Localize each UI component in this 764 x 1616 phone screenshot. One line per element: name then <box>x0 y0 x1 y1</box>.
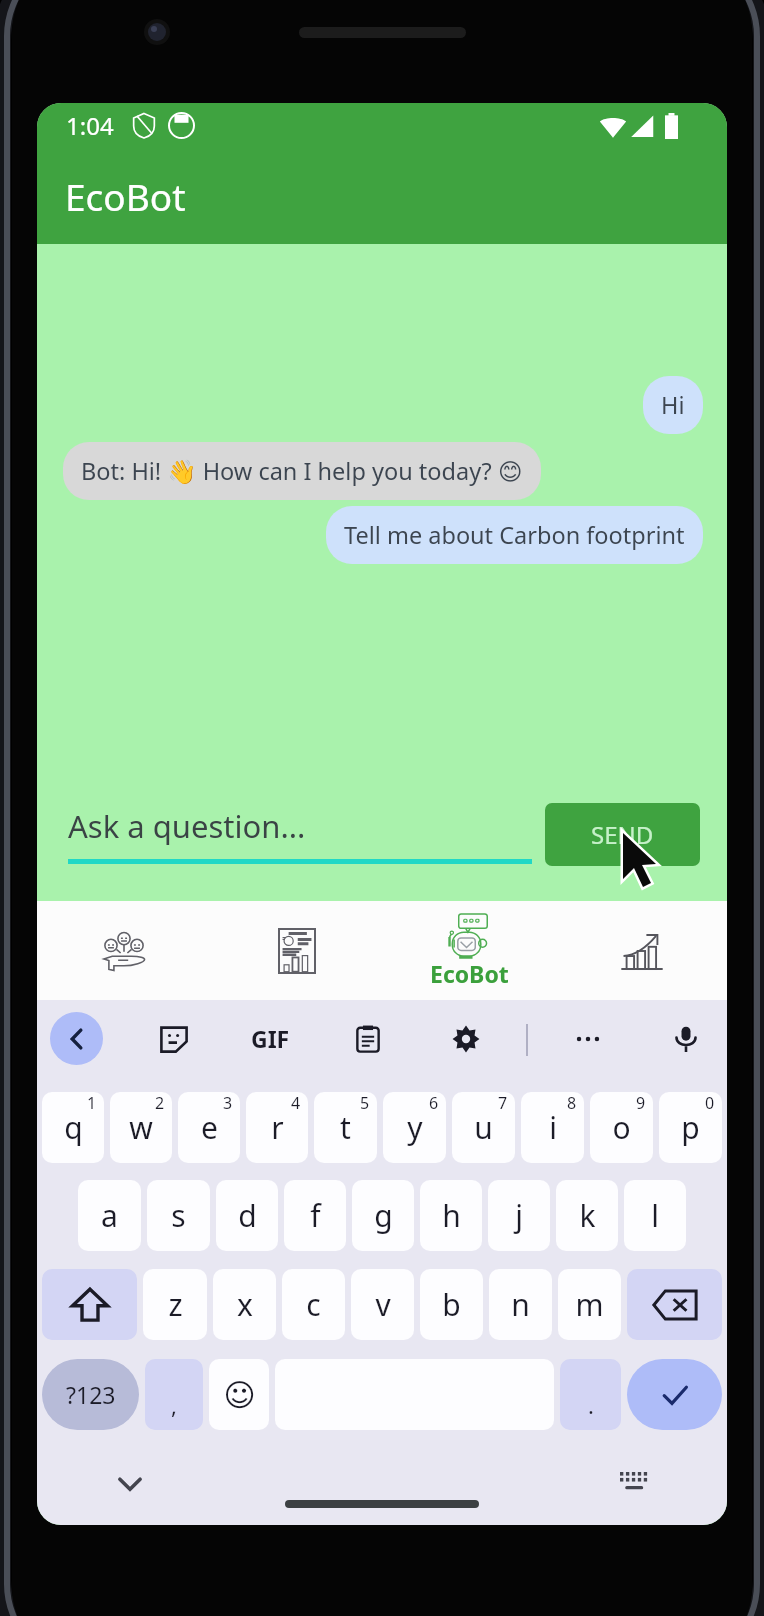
staticText: y <box>407 1107 423 1148</box>
button[interactable]: e <box>178 1092 240 1163</box>
staticText: i <box>549 1107 557 1148</box>
staticText: e <box>201 1107 218 1148</box>
staticText: d <box>238 1195 257 1236</box>
button[interactable]: r <box>246 1092 308 1163</box>
staticText: o <box>612 1107 631 1148</box>
staticText: ?123 <box>66 1379 116 1410</box>
staticText: ☺ <box>223 1377 256 1413</box>
button[interactable]: Voice input <box>659 1012 712 1065</box>
button[interactable]: o <box>590 1092 653 1163</box>
button[interactable]: Reports <box>210 901 383 1000</box>
button[interactable]: t <box>314 1092 377 1163</box>
button[interactable]: l <box>624 1180 686 1251</box>
staticText: t <box>340 1107 351 1148</box>
staticText: 0 <box>705 1092 715 1114</box>
button[interactable]: m <box>558 1269 621 1340</box>
staticText: Ask a question... <box>68 805 306 847</box>
button[interactable]: ?123 <box>42 1359 139 1430</box>
button[interactable]: n <box>489 1269 552 1340</box>
staticText: r <box>271 1107 284 1148</box>
staticText: 2 <box>155 1092 165 1114</box>
button[interactable]: Tell me about Carbon footprint <box>326 506 703 564</box>
button[interactable]: h <box>420 1180 482 1251</box>
button[interactable]: SEND <box>545 803 700 866</box>
button[interactable]: a <box>78 1180 141 1251</box>
button[interactable]: Community <box>37 901 210 1000</box>
staticText: a <box>101 1195 118 1236</box>
button[interactable]: k <box>556 1180 618 1251</box>
button[interactable]: Back <box>50 1012 103 1065</box>
staticText: b <box>442 1284 461 1325</box>
staticText: z <box>168 1284 183 1325</box>
button[interactable]: Hi <box>643 376 703 434</box>
staticText: 8 <box>567 1092 577 1114</box>
button[interactable]: v <box>351 1269 414 1340</box>
button[interactable]: Hide keyboard <box>110 1464 150 1504</box>
button[interactable]: f <box>284 1180 346 1251</box>
button[interactable]: More <box>561 1012 614 1065</box>
staticText: p <box>681 1107 700 1148</box>
button[interactable]: ☺ <box>209 1359 269 1430</box>
staticText: 7 <box>498 1092 508 1114</box>
staticText: v <box>375 1284 391 1325</box>
button[interactable]: EcoBot <box>383 901 556 1000</box>
staticText: f <box>310 1195 321 1236</box>
staticText: u <box>474 1107 493 1148</box>
button[interactable]: p <box>659 1092 722 1163</box>
staticText: w <box>129 1107 153 1148</box>
button[interactable]: Clipboard <box>341 1012 394 1065</box>
staticText: g <box>374 1195 393 1236</box>
button[interactable]: j <box>488 1180 550 1251</box>
staticText: h <box>442 1195 461 1236</box>
button[interactable]: i <box>521 1092 584 1163</box>
button[interactable]: Backspace <box>627 1269 722 1340</box>
staticText: SEND <box>591 818 654 851</box>
staticText: q <box>64 1107 83 1148</box>
staticText: n <box>511 1284 530 1325</box>
button[interactable]: w <box>110 1092 172 1163</box>
staticText: Tell me about Carbon footprint <box>344 519 685 551</box>
staticText: 4 <box>291 1092 301 1114</box>
staticText: EcoBot <box>430 958 509 989</box>
staticText: 9 <box>636 1092 646 1114</box>
button[interactable]: s <box>147 1180 210 1251</box>
button[interactable]: GIF <box>233 1012 307 1065</box>
button[interactable]: y <box>383 1092 446 1163</box>
staticText: k <box>579 1195 596 1236</box>
staticText: x <box>237 1284 253 1325</box>
button[interactable]: Settings <box>439 1012 492 1065</box>
button[interactable]: , <box>145 1359 203 1430</box>
button[interactable]: c <box>282 1269 345 1340</box>
staticText: 5 <box>360 1092 370 1114</box>
staticText: EcoBot <box>65 171 186 221</box>
staticText: 1 <box>87 1092 97 1114</box>
button[interactable]: z <box>143 1269 207 1340</box>
staticText: GIF <box>251 1023 290 1054</box>
button[interactable]: Stickers <box>147 1012 200 1065</box>
staticText: j <box>515 1195 523 1236</box>
staticText: Bot: Hi! 👋 How can I help you today? 😊 <box>81 455 523 487</box>
staticText: 6 <box>429 1092 439 1114</box>
button[interactable]: Switch keyboard <box>614 1461 654 1501</box>
button[interactable]: d <box>216 1180 278 1251</box>
button[interactable]: b <box>420 1269 483 1340</box>
staticText: c <box>306 1284 321 1325</box>
button[interactable]: Bot: Hi! 👋 How can I help you today? 😊 <box>63 442 541 500</box>
staticText: s <box>171 1195 186 1236</box>
staticText: , <box>171 1390 177 1420</box>
button[interactable]: . <box>560 1359 621 1430</box>
button[interactable]: Trends <box>556 901 727 1000</box>
button[interactable]: Shift <box>42 1269 137 1340</box>
button[interactable]: g <box>352 1180 414 1251</box>
button[interactable]: q <box>42 1092 104 1163</box>
button[interactable]: x <box>213 1269 276 1340</box>
staticText: 1:04 <box>66 109 114 142</box>
staticText: . <box>588 1390 594 1420</box>
staticText: Hi <box>661 389 685 421</box>
staticText: l <box>651 1195 659 1236</box>
button[interactable]: u <box>452 1092 515 1163</box>
button[interactable]: Enter <box>627 1359 722 1430</box>
staticText: m <box>575 1284 604 1325</box>
staticText: 3 <box>223 1092 233 1114</box>
